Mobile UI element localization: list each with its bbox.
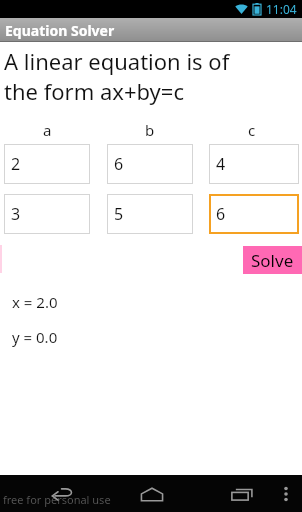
button[interactable]: 4	[209, 144, 299, 184]
button[interactable]: 5	[107, 194, 193, 234]
staticText: 2	[11, 153, 21, 175]
button[interactable]: 3	[4, 194, 90, 234]
staticText: 4	[216, 153, 226, 175]
button[interactable]: 6	[107, 144, 193, 184]
staticText: a	[43, 120, 52, 140]
staticText: Equation Solver	[5, 21, 115, 40]
staticText: Solve	[251, 249, 294, 271]
staticText: 6	[114, 153, 124, 175]
button[interactable]: Solve	[243, 246, 302, 274]
button[interactable]: Back	[44, 480, 80, 508]
staticText: x = 2.0	[12, 292, 58, 312]
staticText: c	[248, 120, 256, 140]
button[interactable]: Home	[132, 480, 172, 508]
button[interactable]: More options	[276, 480, 296, 508]
button[interactable]: 6	[209, 194, 299, 234]
button[interactable]: Recent apps	[222, 480, 262, 508]
button[interactable]: Equation Solver	[0, 18, 302, 42]
staticText: 5	[114, 203, 124, 225]
staticText: b	[145, 120, 155, 140]
staticText: y = 0.0	[12, 327, 58, 347]
staticText: 3	[11, 203, 21, 225]
button[interactable]: 2	[4, 144, 90, 184]
staticText: 11:04	[266, 1, 297, 17]
staticText: A linear equation is of the form ax+by=c	[4, 46, 230, 106]
staticText: free for personal use	[3, 492, 111, 507]
staticText: 6	[216, 203, 226, 225]
